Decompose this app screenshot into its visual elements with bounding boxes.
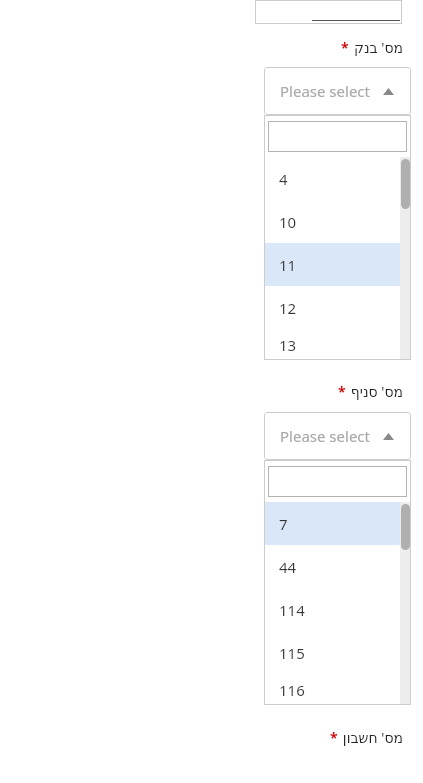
staticText: 10 <box>279 212 297 232</box>
staticText: 13 <box>279 335 297 355</box>
button[interactable]: 11 <box>264 243 400 286</box>
staticText: מס' בנק <box>353 38 403 57</box>
staticText: 44 <box>279 557 297 577</box>
button[interactable]: 114 <box>264 588 400 631</box>
staticText: מס' חשבון <box>342 728 403 747</box>
staticText: 11 <box>279 255 297 275</box>
button[interactable]: 44 <box>264 545 400 588</box>
button[interactable] <box>255 0 402 24</box>
other: Collapse list <box>383 433 394 440</box>
staticText: 116 <box>279 680 305 700</box>
button[interactable]: 13 <box>264 329 400 360</box>
button[interactable] <box>268 466 407 497</box>
staticText: מס' סניף <box>350 382 403 401</box>
staticText: 115 <box>279 643 305 663</box>
staticText: 12 <box>279 298 297 318</box>
staticText: * <box>338 382 346 401</box>
staticText: 4 <box>279 169 288 189</box>
button[interactable]: 12 <box>264 286 400 329</box>
staticText: * <box>330 728 338 747</box>
button[interactable]: Please select <box>264 412 411 460</box>
button[interactable]: 115 <box>264 631 400 674</box>
staticText: * <box>341 38 349 57</box>
staticText: Please select <box>280 81 370 101</box>
button[interactable]: 10 <box>264 200 400 243</box>
button[interactable]: 116 <box>264 674 400 705</box>
button[interactable]: 7 <box>264 502 400 545</box>
staticText: 7 <box>279 514 288 534</box>
button[interactable] <box>268 121 407 152</box>
button[interactable]: 4 <box>264 157 400 200</box>
staticText: Please select <box>280 426 370 446</box>
other: Collapse list <box>383 88 394 95</box>
button[interactable]: Please select <box>264 67 411 115</box>
staticText: 114 <box>279 600 305 620</box>
